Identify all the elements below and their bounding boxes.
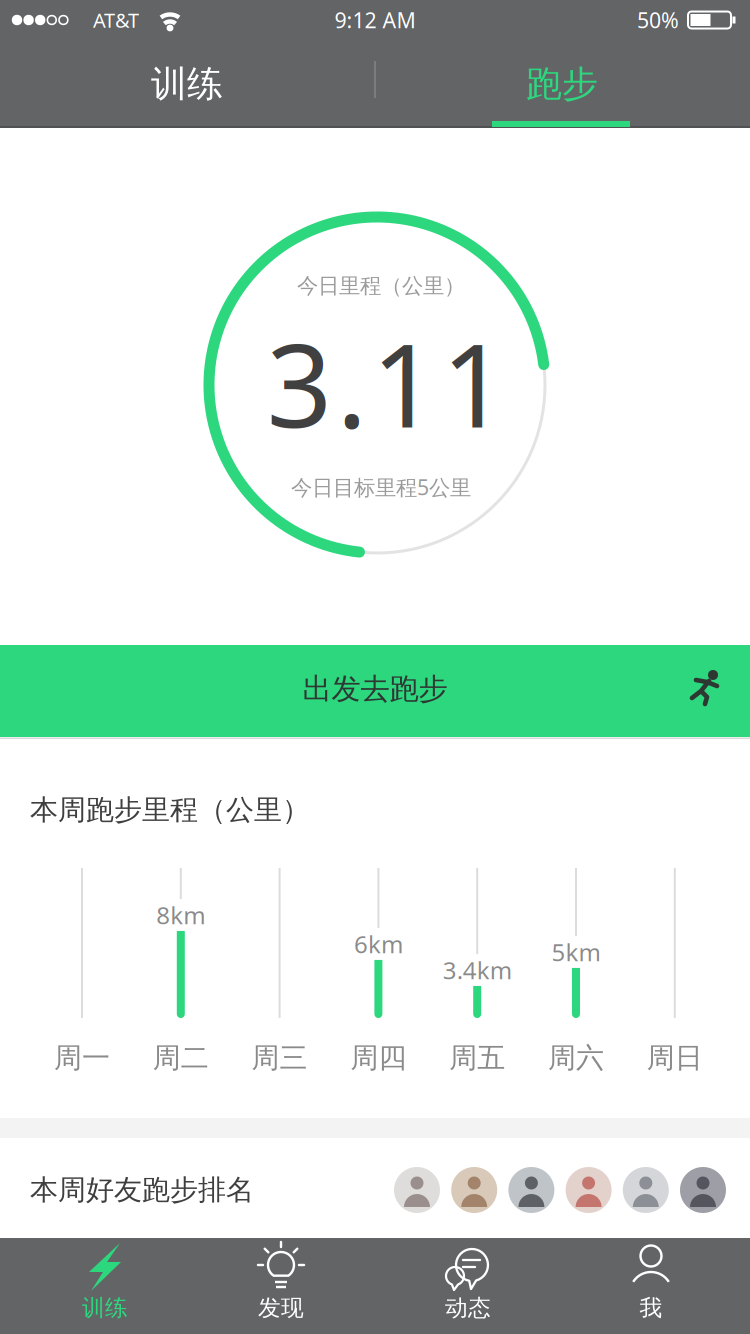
button[interactable]: 我	[561, 1238, 741, 1334]
staticText: 50%	[637, 6, 679, 34]
staticText: 8km	[156, 899, 205, 931]
staticText: .	[336, 307, 367, 459]
staticText: 1	[371, 307, 437, 459]
staticText: 周六	[548, 1041, 604, 1075]
button[interactable]: 本周好友跑步排名	[0, 1138, 750, 1238]
staticText: 出发去跑步	[302, 671, 447, 707]
staticText: 我	[639, 1294, 662, 1322]
staticText: 今日里程（公里）	[297, 273, 465, 299]
staticText: 今日目标里程5公里	[291, 473, 471, 501]
staticText: 周五	[449, 1041, 505, 1075]
button[interactable]: 训练	[15, 1238, 195, 1334]
staticText: 周三	[252, 1041, 308, 1075]
staticText: 训练	[151, 62, 223, 106]
staticText: 5km	[551, 936, 600, 968]
staticText: 1	[441, 307, 507, 459]
staticText: 6km	[354, 928, 403, 960]
button[interactable]: 动态	[378, 1238, 558, 1334]
staticText: 动态	[445, 1294, 491, 1322]
staticText: 周一	[54, 1041, 110, 1075]
staticText: 本周好友跑步排名	[30, 1173, 254, 1207]
staticText: AT&T	[93, 7, 139, 33]
staticText: 3	[266, 307, 332, 459]
button[interactable]: 训练	[2, 40, 372, 128]
button[interactable]: 跑步	[376, 40, 748, 128]
staticText: 发现	[258, 1294, 304, 1322]
staticText: 3.4km	[443, 954, 512, 986]
staticText: 9:12 AM	[334, 6, 415, 34]
staticText: 跑步	[526, 62, 598, 106]
staticText: 周四	[350, 1041, 406, 1075]
staticText: 训练	[82, 1294, 128, 1322]
staticText: 周日	[647, 1041, 703, 1075]
staticText: 周二	[153, 1041, 209, 1075]
button[interactable]: 发现	[191, 1238, 371, 1334]
staticText: 本周跑步里程（公里）	[30, 793, 310, 827]
button[interactable]: 出发去跑步	[0, 645, 750, 737]
